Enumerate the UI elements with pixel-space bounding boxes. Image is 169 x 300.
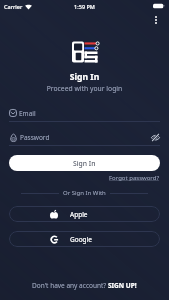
- button[interactable]: More options: [149, 13, 163, 27]
- staticText: 1:59 PM: [0, 3, 169, 10]
- button[interactable]: Google: [9, 231, 160, 247]
- staticText: Proceed with your login: [0, 84, 169, 93]
- staticText: Google: [70, 235, 92, 244]
- staticText: Don't have any account?: [32, 281, 108, 290]
- staticText: Sign In: [0, 71, 169, 83]
- staticText: Apple: [70, 210, 88, 219]
- button[interactable]: Forgot password?: [109, 174, 160, 182]
- staticText: Or Sign In With: [63, 189, 106, 197]
- staticText: Carrier: [4, 3, 23, 10]
- button[interactable]: Apple: [9, 206, 160, 222]
- button[interactable]: Sign In: [9, 155, 160, 171]
- staticText: Sign In: [73, 159, 96, 168]
- staticText: Email: [19, 109, 36, 118]
- button[interactable]: Show password: [150, 132, 160, 142]
- staticText: Password: [20, 133, 50, 142]
- button[interactable]: SIGN UP!: [108, 281, 137, 290]
